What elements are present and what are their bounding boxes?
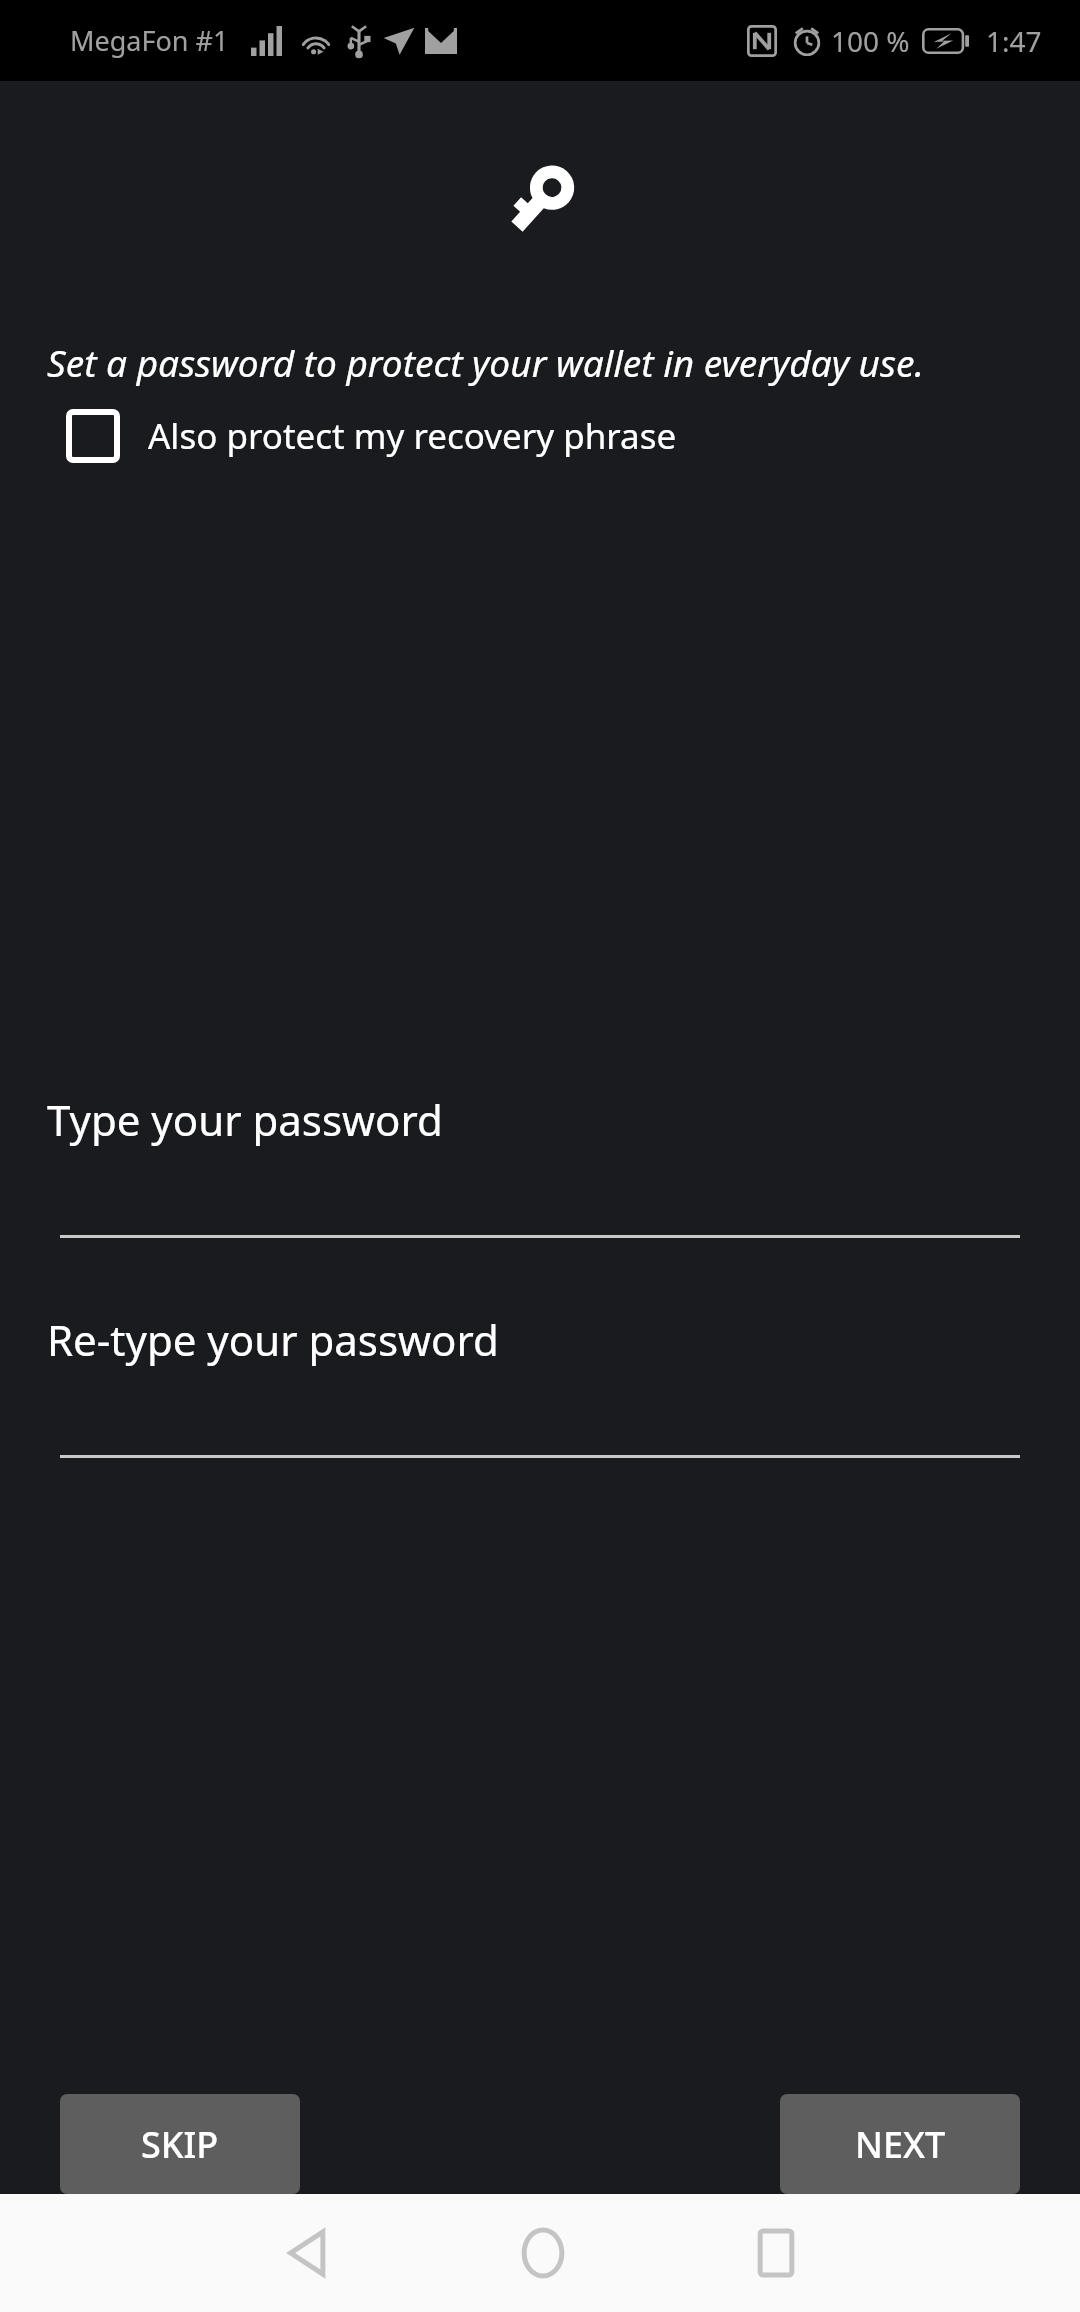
staticText: Also protect my recovery phrase <box>148 412 677 460</box>
staticText: SKIP <box>141 2120 219 2169</box>
button[interactable]: Back <box>230 2194 390 2312</box>
staticText: MegaFon #1 <box>70 22 229 59</box>
button[interactable]: Recents <box>696 2194 856 2312</box>
button[interactable]: Also protect my recovery phrase <box>0 405 1080 467</box>
button[interactable]: SKIP <box>60 2094 300 2194</box>
button[interactable]: NEXT <box>780 2094 1020 2194</box>
button[interactable]: Home <box>463 2194 623 2312</box>
button[interactable]: Re-type your password <box>47 1311 499 1368</box>
staticText: NEXT <box>855 2120 946 2169</box>
staticText: 1:47 <box>986 22 1042 60</box>
staticText: Set a password to protect your wallet in… <box>47 337 924 387</box>
button[interactable]: Type your password <box>47 1091 443 1148</box>
other: Key <box>499 160 581 242</box>
staticText: 100 % <box>831 22 910 60</box>
